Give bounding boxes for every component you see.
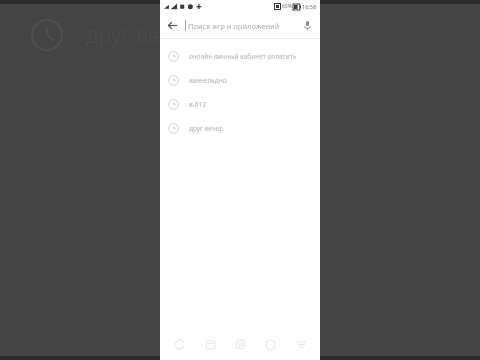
button[interactable]: в-612 — [160, 92, 320, 116]
button[interactable]: Фильмы — [229, 333, 251, 355]
button[interactable]: Книги — [259, 333, 281, 355]
staticText: онлайн личный кабинет оплатить — [189, 52, 297, 61]
button[interactable]: Приложения — [199, 333, 221, 355]
staticText: Поиск игр и приложений — [188, 21, 280, 31]
button[interactable]: Меню — [290, 333, 312, 355]
button[interactable]: онлайн личный кабинет оплатить — [160, 44, 320, 68]
button[interactable]: Голосовой поиск — [295, 13, 320, 38]
button[interactable]: Назад — [160, 13, 185, 38]
staticText: друг вечер — [189, 124, 224, 133]
staticText: 16:58 — [302, 3, 317, 10]
staticText: каннельдно — [189, 76, 227, 85]
button[interactable]: Игры — [168, 333, 190, 355]
button[interactable]: друг вечер — [160, 116, 320, 140]
button[interactable]: каннельдно — [160, 68, 320, 92]
staticText: в-612 — [189, 100, 206, 109]
staticText: 60% — [282, 3, 292, 10]
button[interactable]: Поиск игр и приложений — [188, 13, 295, 38]
